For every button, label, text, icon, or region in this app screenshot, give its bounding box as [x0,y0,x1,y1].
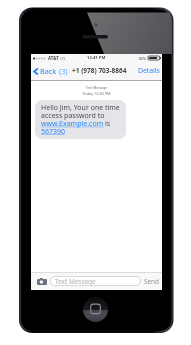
button[interactable]: Details [138,66,160,75]
staticText: Hello Jim, Your one time access password… [41,103,123,136]
button[interactable]: Hello Jim, Your one time access password… [35,100,126,139]
staticText: LTE [60,56,66,61]
staticText: Today 12:40 PM [31,91,162,96]
staticText: Back [40,66,59,76]
button[interactable]: Text Message [51,277,140,285]
staticText: AT&T [48,55,59,61]
staticText: Text Message [55,277,96,285]
staticText: Text Message [31,85,162,90]
button[interactable]: Send [144,277,159,286]
staticText: (3) [59,66,68,76]
staticText: 82% [139,56,147,61]
staticText: +1 (978) 703-8864 [72,66,127,75]
button[interactable]: Back [33,66,68,76]
staticText: 12:41 PM [87,55,106,61]
button[interactable]: Take photo [36,277,47,286]
button[interactable]: Home [83,297,108,322]
